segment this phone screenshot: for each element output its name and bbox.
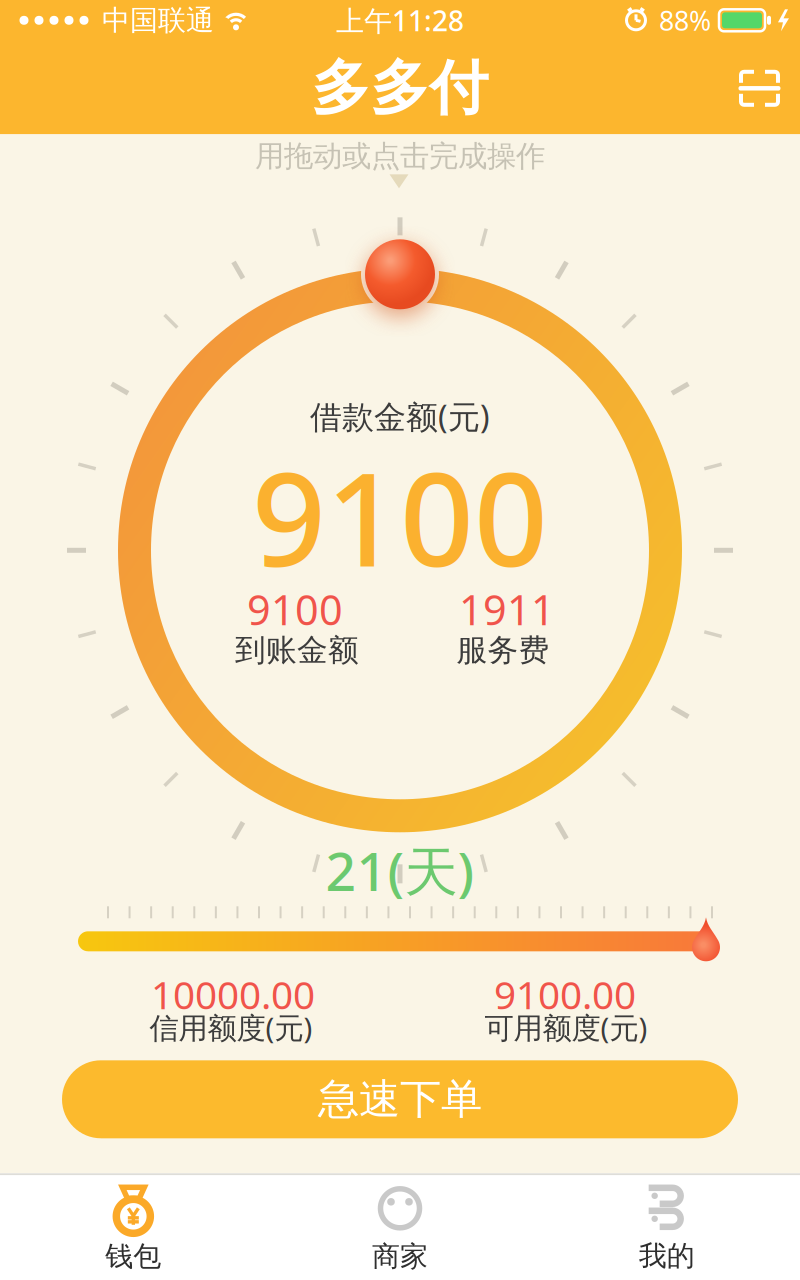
- staticText: 上午11:28: [336, 2, 464, 39]
- staticText: 88%: [659, 3, 711, 38]
- staticText: 10000.00: [151, 969, 315, 1020]
- staticText: 急速下单: [318, 1074, 482, 1125]
- staticText: 21(天): [325, 835, 474, 906]
- button[interactable]: 扫一扫: [739, 70, 780, 107]
- staticText: 信用额度(元): [149, 1008, 312, 1047]
- staticText: 钱包: [105, 1239, 161, 1274]
- button[interactable]: 拖动调整借款天数: [690, 917, 722, 963]
- button[interactable]: 商家: [267, 1182, 533, 1274]
- staticText: 9100: [247, 582, 343, 637]
- staticText: 可用额度(元): [484, 1008, 647, 1047]
- staticText: 借款金额(元): [310, 395, 490, 438]
- staticText: 用拖动或点击完成操作: [255, 138, 545, 174]
- staticText: 我的: [639, 1239, 695, 1273]
- button[interactable]: 钱包: [0, 1182, 267, 1274]
- staticText: 商家: [372, 1239, 428, 1274]
- button[interactable]: 急速下单: [62, 1060, 738, 1138]
- staticText: 9100: [252, 430, 548, 602]
- staticText: 1911: [459, 582, 555, 637]
- staticText: 9100.00: [494, 969, 636, 1020]
- button[interactable]: 拖动调整借款金额: [365, 239, 435, 309]
- staticText: 多多付: [311, 52, 488, 124]
- staticText: 到账金额: [235, 631, 359, 669]
- button[interactable]: 我的: [533, 1183, 800, 1273]
- staticText: 中国联通: [102, 3, 214, 37]
- staticText: 服务费: [456, 631, 549, 669]
